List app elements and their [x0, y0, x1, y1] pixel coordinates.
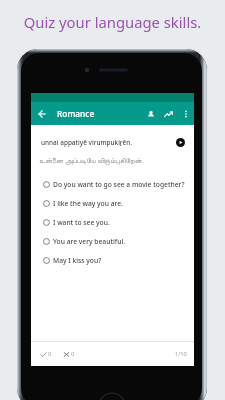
staticText: 0: [71, 350, 75, 358]
button[interactable]: Statistics: [161, 107, 175, 121]
button[interactable]: More options: [179, 107, 193, 121]
staticText: You are very beautiful.: [53, 237, 126, 246]
staticText: 1/10: [175, 350, 187, 358]
staticText: 0: [48, 350, 52, 358]
button[interactable]: I like the way you are.: [31, 194, 194, 213]
button[interactable]: Do you want to go see a movie together?: [31, 175, 194, 194]
staticText: Do you want to go see a movie together?: [53, 180, 185, 189]
staticText: I want to see you.: [53, 218, 110, 227]
staticText: unnai appatiyē virumpukiṟēn.: [41, 138, 133, 147]
staticText: I like the way you are.: [53, 199, 123, 208]
staticText: Romance: [57, 108, 95, 119]
button[interactable]: May I kiss you?: [31, 251, 194, 270]
button[interactable]: Profile: [144, 107, 158, 121]
button[interactable]: I want to see you.: [31, 213, 194, 232]
button[interactable]: Correct count: [40, 350, 52, 358]
button[interactable]: Play audio: [174, 136, 187, 149]
staticText: May I kiss you?: [53, 256, 102, 265]
button[interactable]: You are very beautiful.: [31, 232, 194, 251]
staticText: உன்னை அப்படியே விரும்புகிறேன்.: [39, 155, 144, 165]
staticText: Quiz your language skills.: [0, 12, 225, 32]
button[interactable]: Back: [35, 107, 49, 121]
button[interactable]: Wrong count: [63, 350, 75, 358]
